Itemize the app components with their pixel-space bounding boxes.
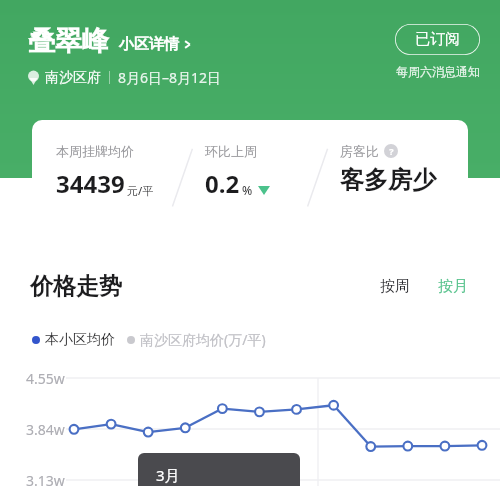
staticText: 按周 — [380, 277, 410, 296]
button[interactable]: 已订阅 — [395, 24, 480, 55]
staticText: 每周六消息通知 — [396, 64, 480, 79]
button[interactable]: 房客比说明 — [384, 144, 398, 158]
staticText: 0.2 — [205, 167, 240, 200]
staticText: 小区详情 — [119, 35, 179, 54]
staticText: 客多房少 — [340, 165, 436, 195]
button[interactable]: 小区详情 — [119, 35, 193, 54]
staticText: 南沙区府均价(万/平) — [140, 330, 266, 349]
button[interactable]: 3月 — [138, 453, 300, 486]
staticText: 3月 — [156, 465, 180, 485]
button[interactable]: 本周挂牌均价 — [32, 120, 468, 240]
staticText: 3.13w — [26, 471, 65, 486]
staticText: 4.55w — [26, 369, 65, 388]
button[interactable]: 按月 — [432, 272, 474, 301]
staticText: 本周挂牌均价 — [56, 143, 134, 159]
staticText: 3.84w — [26, 420, 65, 439]
staticText: 房客比 — [340, 143, 379, 159]
staticText: % — [242, 182, 253, 198]
staticText: 南沙区府 — [45, 69, 101, 87]
staticText: 元/平 — [127, 183, 154, 198]
staticText: 已订阅 — [415, 30, 460, 49]
staticText: 本小区均价 — [45, 331, 115, 349]
button[interactable]: 按周 — [374, 272, 416, 301]
staticText: 价格走势 — [30, 272, 122, 301]
staticText: ? — [389, 145, 394, 157]
staticText: 34439 — [56, 167, 125, 200]
staticText: 8月6日–8月12日 — [118, 68, 222, 87]
staticText: 环比上周 — [205, 143, 257, 159]
staticText: 按月 — [438, 277, 468, 296]
staticText: 叠翠峰 — [28, 24, 109, 58]
